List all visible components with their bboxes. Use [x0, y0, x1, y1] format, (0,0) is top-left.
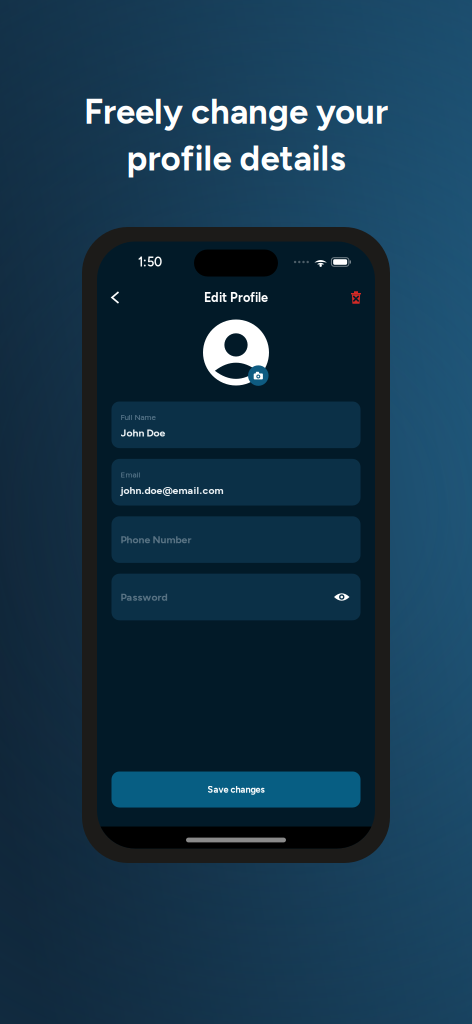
- staticText: Phone Number: [120, 533, 191, 546]
- button[interactable]: Password: [111, 574, 360, 620]
- button[interactable]: Change profile photo: [247, 365, 269, 387]
- staticText: Full Name: [120, 412, 155, 422]
- staticText: john.doe@email.com: [120, 484, 223, 496]
- staticText: Save changes: [207, 784, 264, 795]
- button[interactable]: Back: [103, 283, 127, 312]
- button[interactable]: Save changes: [111, 771, 360, 807]
- button[interactable]: Delete account: [343, 283, 369, 312]
- staticText: John Doe: [120, 427, 165, 439]
- staticText: Email: [120, 470, 140, 479]
- staticText: Password: [120, 591, 167, 603]
- button[interactable]: Phone Number: [111, 516, 360, 563]
- button[interactable]: Email: [111, 459, 360, 505]
- button[interactable]: Full Name: [111, 401, 360, 448]
- staticText: Edit Profile: [204, 290, 268, 305]
- staticText: 1:50: [138, 254, 162, 270]
- staticText: profile details: [126, 137, 345, 179]
- staticText: Freely change your: [84, 91, 388, 132]
